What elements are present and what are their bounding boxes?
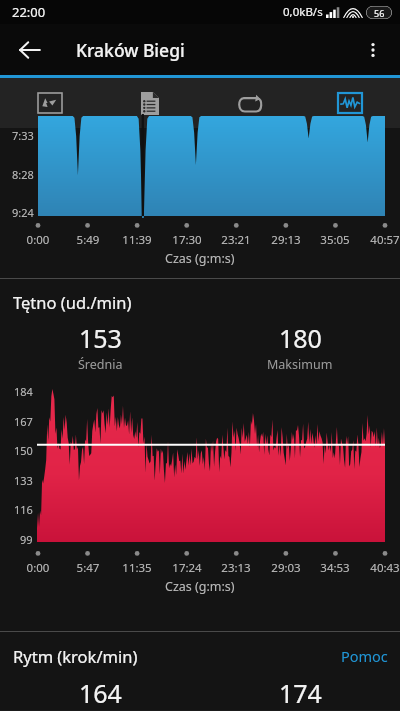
- staticText: 17:24: [166, 560, 208, 576]
- staticText: 184: [14, 384, 33, 399]
- button[interactable]: Details: [100, 78, 200, 128]
- staticText: 29:13: [265, 232, 307, 248]
- staticText: 0:00: [17, 232, 59, 248]
- staticText: Czas (g:m:s): [165, 578, 235, 595]
- staticText: 0,0kB/s: [283, 4, 323, 20]
- button[interactable]: Charts: [300, 78, 400, 128]
- staticText: 11:35: [116, 560, 158, 576]
- staticText: 180: [279, 321, 322, 355]
- button[interactable]: Pomoc: [329, 644, 400, 668]
- staticText: 40:43: [364, 560, 400, 576]
- staticText: 35:05: [314, 232, 356, 248]
- staticText: 174: [279, 676, 322, 710]
- staticText: 17:30: [166, 232, 208, 248]
- staticText: 164: [79, 676, 122, 710]
- staticText: 0:00: [17, 560, 59, 576]
- staticText: 8:28: [12, 167, 34, 182]
- staticText: 5:49: [67, 232, 109, 248]
- staticText: 5:47: [67, 560, 109, 576]
- button[interactable]: Map: [0, 78, 100, 128]
- staticText: 150: [14, 443, 33, 458]
- button[interactable]: More options: [352, 29, 394, 71]
- staticText: Tętno (ud./min): [13, 291, 132, 313]
- staticText: 9:24: [12, 205, 34, 220]
- staticText: Kraków Biegi: [76, 38, 185, 62]
- staticText: 11:39: [116, 232, 158, 248]
- staticText: 34:53: [314, 560, 356, 576]
- staticText: 7:33: [12, 128, 34, 143]
- staticText: 29:03: [265, 560, 307, 576]
- staticText: Pomoc: [341, 646, 388, 666]
- staticText: 56: [374, 7, 385, 19]
- button[interactable]: 180: [200, 321, 400, 373]
- staticText: 23:13: [215, 560, 257, 576]
- button[interactable]: 153: [0, 321, 200, 373]
- staticText: 99: [20, 532, 33, 547]
- staticText: Rytm (krok/min): [13, 645, 138, 667]
- staticText: 167: [14, 414, 33, 429]
- staticText: 23:21: [215, 232, 257, 248]
- button[interactable]: Back: [8, 28, 52, 72]
- staticText: 116: [14, 502, 33, 517]
- staticText: 153: [79, 321, 122, 355]
- staticText: 40:57: [364, 232, 400, 248]
- staticText: Maksimum: [267, 356, 333, 373]
- staticText: 133: [14, 473, 33, 488]
- staticText: 22:00: [12, 3, 46, 21]
- staticText: Średnia: [78, 356, 123, 373]
- staticText: Czas (g:m:s): [165, 250, 235, 267]
- button[interactable]: Laps: [200, 78, 300, 128]
